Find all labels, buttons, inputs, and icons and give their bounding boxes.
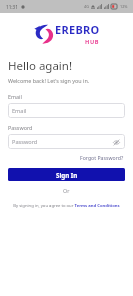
staticText: Or (63, 187, 70, 194)
staticText: Password (12, 138, 38, 146)
button[interactable]: Email (8, 103, 125, 118)
staticText: Forgot Password? (80, 154, 124, 161)
button[interactable]: Password (8, 134, 125, 149)
staticText: Password (8, 124, 33, 131)
staticText: EREBRO (55, 22, 100, 37)
staticText: 12% (120, 4, 128, 9)
staticText: Welcome back! Let's sign you in. (8, 77, 90, 84)
staticText: Email (8, 93, 22, 100)
button[interactable]: Forgot Password? (79, 153, 125, 162)
staticText: Email (12, 107, 27, 115)
staticText: 11:31 (6, 4, 18, 10)
staticText: Hello again! (8, 58, 73, 74)
staticText: By signing in, you agree to our Terms an… (13, 203, 120, 209)
staticText: 4G (84, 4, 89, 9)
staticText: Sign In (56, 171, 78, 179)
staticText: HUB (85, 38, 100, 46)
button[interactable]: Sign In (8, 168, 125, 181)
button[interactable]: Show password (111, 137, 121, 147)
